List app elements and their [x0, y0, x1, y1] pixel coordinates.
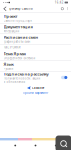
button[interactable]: Документация: [0, 23, 71, 33]
button[interactable]: Search: [55, 135, 71, 150]
button[interactable]: Home: [30, 141, 40, 149]
button[interactable]: Проект: [0, 13, 71, 23]
button[interactable]: Tabs: [10, 141, 20, 149]
staticText: Русский: [3, 67, 13, 70]
button[interactable]: Пройти маркетинг: [23, 91, 48, 95]
staticText: 16:42: [55, 1, 64, 4]
staticText: Получайте новости, акции: [3, 77, 40, 80]
staticText: Язык: [3, 62, 13, 67]
staticText: Расписание смен: [3, 35, 38, 40]
staticText: Инструкции: [3, 29, 19, 33]
staticText: НАСТРОЙКИ: [3, 46, 20, 49]
staticText: Самолет Город-парк: [3, 19, 31, 22]
button[interactable]: Menu: [65, 5, 70, 12]
staticText: Проект: [3, 14, 17, 19]
button[interactable]: Reload: [60, 5, 65, 12]
button[interactable]: More: [51, 141, 61, 149]
staticText: Тема Яркая: [3, 51, 25, 56]
staticText: и обновления: [3, 80, 25, 84]
staticText: Документация: [3, 24, 32, 29]
staticText: Определяется системой: [3, 56, 35, 60]
staticText: График работы смен: [3, 40, 30, 43]
button[interactable]: Back: [1, 5, 9, 12]
staticText: Пройти маркетинг: [23, 91, 48, 95]
button[interactable]: Тема Яркая: [0, 50, 71, 60]
staticText: Подписка на рассылку: [3, 71, 48, 77]
button[interactable]: Язык: [0, 61, 71, 71]
button[interactable]: Подписка на рассылку: [0, 71, 71, 83]
staticText: Тренажёр Самолёт: [9, 7, 33, 10]
staticText: Самолёт: [32, 86, 44, 90]
button[interactable]: Расписание смен: [0, 34, 71, 44]
